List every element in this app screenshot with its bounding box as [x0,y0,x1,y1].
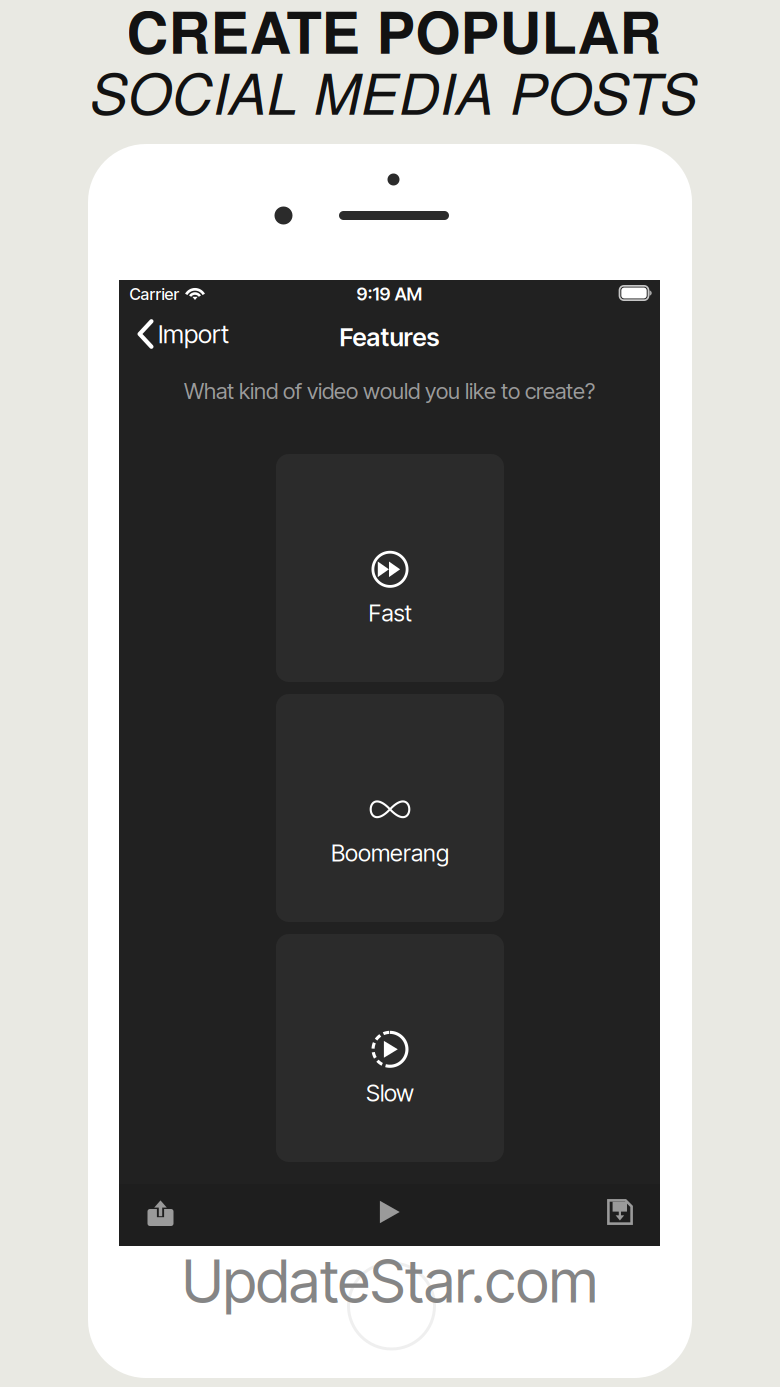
staticText: CREATE POPULAR [126,0,661,71]
staticText: What kind of video would you like to cre… [184,378,595,404]
staticText: Slow [366,1079,414,1107]
button[interactable]: Import [137,311,261,357]
staticText: 9:19 AM [356,283,422,305]
button[interactable]: Save [595,1191,645,1233]
staticText: Carrier [129,284,179,304]
button[interactable]: Play [369,1191,411,1233]
staticText: Features [339,322,439,352]
staticText: Boomerang [331,839,449,867]
button[interactable]: Share [134,1192,186,1234]
button[interactable]: Fast [276,454,504,682]
staticText: SOCIAL MEDIA POSTS [90,51,698,131]
staticText: Fast [368,599,411,627]
button[interactable]: Slow [276,934,504,1162]
staticText: Import [158,319,229,349]
button[interactable]: Boomerang [276,694,504,922]
staticText: UpdateStar.com [182,1245,598,1317]
